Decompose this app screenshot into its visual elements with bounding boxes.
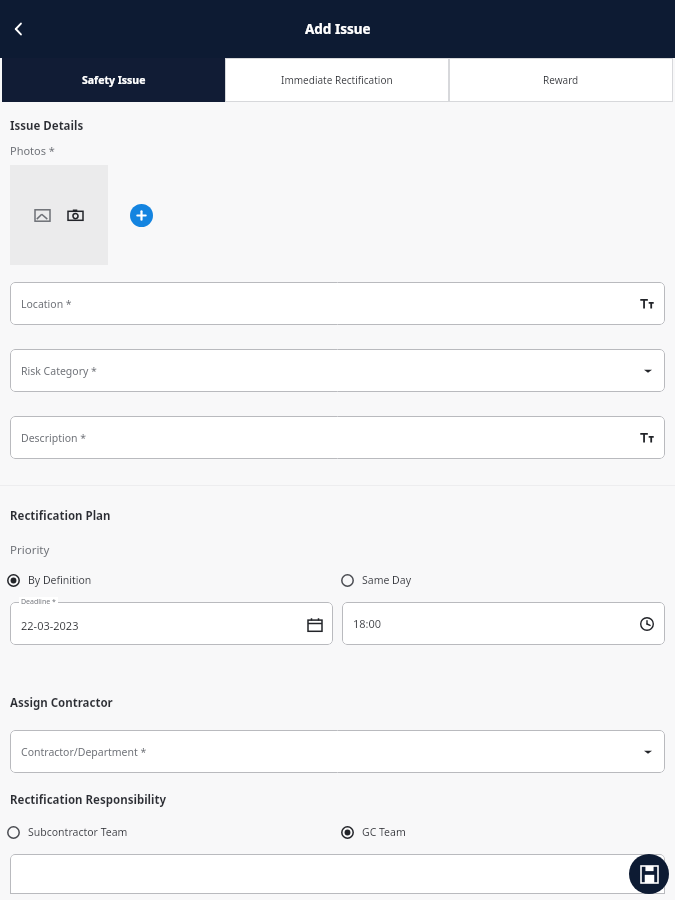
- button[interactable]: Add photo: [130, 204, 153, 227]
- button[interactable]: Back: [2, 12, 36, 46]
- button[interactable]: Save: [629, 854, 669, 894]
- staticText: Rectification Responsibility: [10, 792, 167, 808]
- staticText: Immediate Rectification: [281, 73, 393, 87]
- staticText: 18:00: [353, 616, 382, 631]
- staticText: Assign Contractor: [10, 695, 113, 711]
- button[interactable]: Subcontractor Team: [7, 825, 337, 839]
- staticText: Contractor/Department *: [21, 745, 147, 759]
- button[interactable]: Contractor/Department *: [10, 730, 665, 773]
- staticText: Issue Details: [10, 118, 84, 134]
- staticText: Description *: [21, 431, 87, 445]
- staticText: Photos *: [10, 143, 55, 158]
- button[interactable]: Location *: [10, 282, 665, 325]
- staticText: Rectification Plan: [10, 508, 111, 524]
- button[interactable]: Risk Category *: [10, 349, 665, 392]
- button[interactable]: [10, 854, 665, 894]
- button[interactable]: 18:00: [342, 602, 665, 645]
- button[interactable]: GC Team: [341, 825, 675, 839]
- staticText: Deadline *: [21, 597, 56, 607]
- staticText: Location *: [21, 297, 72, 311]
- staticText: Priority: [10, 542, 50, 558]
- button[interactable]: Reward: [449, 58, 673, 102]
- staticText: By Definition: [28, 573, 92, 587]
- button[interactable]: Description *: [10, 416, 665, 459]
- staticText: Reward: [543, 73, 579, 87]
- staticText: Risk Category *: [21, 364, 97, 378]
- button[interactable]: [10, 165, 108, 265]
- staticText: GC Team: [362, 825, 406, 839]
- staticText: Add Issue: [305, 20, 371, 38]
- button[interactable]: 22-03-2023: [10, 602, 333, 645]
- button[interactable]: Same Day: [341, 573, 675, 587]
- staticText: Same Day: [362, 573, 412, 587]
- staticText: Subcontractor Team: [28, 825, 128, 839]
- button[interactable]: By Definition: [7, 573, 337, 587]
- button[interactable]: Immediate Rectification: [225, 58, 449, 102]
- staticText: Safety Issue: [82, 73, 146, 87]
- staticText: 22-03-2023: [21, 618, 79, 633]
- button[interactable]: Safety Issue: [2, 58, 225, 102]
